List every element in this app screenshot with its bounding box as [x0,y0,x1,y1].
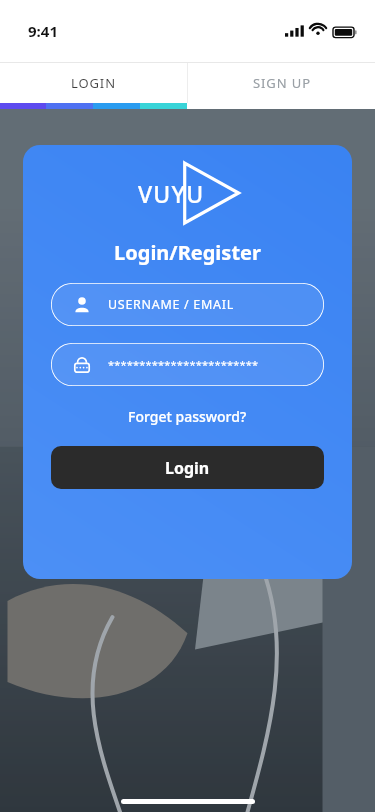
button[interactable]: Password field [51,343,324,386]
button[interactable]: Forget password? [118,404,257,429]
button[interactable]: LOGIN [0,63,187,103]
staticText: VUYU [138,178,205,209]
staticText: Login/Register [114,239,261,266]
button[interactable]: Username or email field [51,283,324,326]
staticText: USERNAME / EMAIL [108,296,234,313]
staticText: ************************ [108,357,259,372]
staticText: 9:41 [28,21,58,41]
staticText: Forget password? [128,407,247,426]
button[interactable]: Login [51,446,324,489]
button[interactable]: SIGN UP [188,63,375,103]
staticText: LOGIN [71,74,116,92]
staticText: SIGN UP [253,74,311,92]
staticText: Login [165,457,210,479]
